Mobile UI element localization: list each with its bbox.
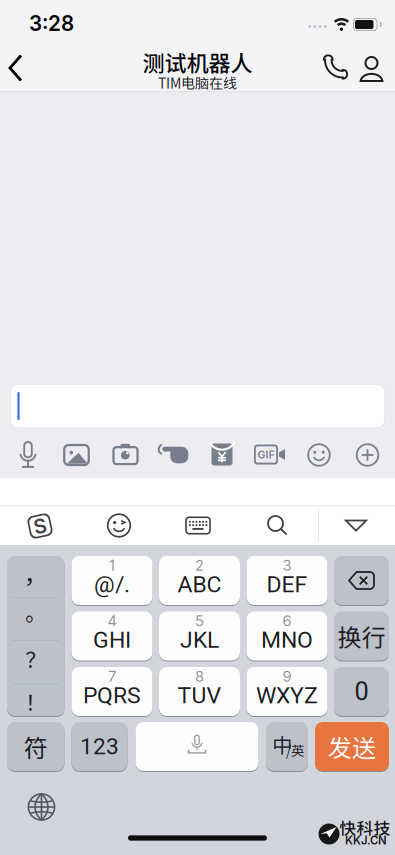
staticText: GHI <box>93 627 131 653</box>
staticText: WXYZ <box>256 682 318 709</box>
staticText: 9 <box>282 668 291 685</box>
staticText: 发送 <box>328 729 376 764</box>
button[interactable]: 换行 <box>334 611 389 661</box>
staticText: KKJ.CN <box>345 834 387 847</box>
button[interactable]: 发送 <box>315 721 389 771</box>
staticText: S <box>33 514 46 538</box>
staticText: /英 <box>286 740 304 760</box>
staticText: PQRS <box>83 682 141 709</box>
staticText: 2 <box>195 557 204 574</box>
staticText: JKL <box>180 627 219 653</box>
button[interactable]: Camera <box>110 442 140 468</box>
staticText: ， <box>24 556 48 590</box>
button[interactable]: 1 <box>71 555 152 605</box>
button[interactable]: Emoji <box>307 443 331 467</box>
staticText: 7 <box>108 668 116 685</box>
button[interactable]: Back <box>0 48 33 88</box>
button[interactable]: Nudge <box>158 443 188 467</box>
button[interactable]: 3 <box>246 555 327 605</box>
staticText: 4 <box>107 612 116 630</box>
button[interactable]: Next keyboard <box>27 792 56 821</box>
button[interactable]: 9 <box>246 666 327 716</box>
button[interactable]: Delete <box>334 555 389 605</box>
staticText: 。 <box>25 596 46 627</box>
staticText: ABC <box>177 571 221 598</box>
button[interactable]: Voice message <box>17 439 39 471</box>
button[interactable]: 符 <box>7 721 64 771</box>
button[interactable]: 4 <box>71 611 152 661</box>
button[interactable]: Sogou <box>26 512 53 539</box>
staticText: GIF <box>257 448 274 461</box>
button[interactable]: Voice call <box>313 49 353 89</box>
staticText: ！ <box>25 686 46 717</box>
staticText: 123 <box>80 733 119 760</box>
button[interactable]: 123 <box>71 721 127 771</box>
button[interactable]: 8 <box>159 666 240 716</box>
staticText: 换行 <box>337 619 385 653</box>
button[interactable]: 5 <box>159 611 240 661</box>
button[interactable]: 6 <box>246 611 327 661</box>
staticText: 6 <box>282 612 291 630</box>
button[interactable]: Keyboard layout <box>184 515 212 535</box>
button[interactable]: Emoji keyboard <box>106 513 131 538</box>
staticText: 5 <box>195 612 204 630</box>
button[interactable]: Search <box>266 514 288 536</box>
staticText: 测试机器人 <box>142 46 252 78</box>
button[interactable]: Space, voice input <box>135 721 258 771</box>
staticText: TIM电脑在线 <box>158 72 237 93</box>
button[interactable]: Profile <box>351 49 391 89</box>
staticText: 1 <box>109 557 115 574</box>
staticText: ？ <box>25 643 46 674</box>
button[interactable]: 测试机器人 <box>107 45 287 91</box>
button[interactable]: Photos <box>62 443 90 467</box>
staticText: 3 <box>282 557 291 574</box>
staticText: 3:28 <box>29 11 74 36</box>
staticText: 快科技 <box>339 815 390 839</box>
staticText: @/. <box>94 571 130 598</box>
staticText: TUV <box>177 682 221 709</box>
staticText: 8 <box>195 668 204 685</box>
button[interactable]: 中 <box>266 721 308 771</box>
button[interactable]: 0 <box>334 666 389 716</box>
button[interactable]: GIF <box>254 443 287 465</box>
staticText: 0 <box>354 677 368 706</box>
button[interactable]: 2 <box>159 555 240 605</box>
button[interactable]: Message input <box>10 384 385 428</box>
button[interactable]: Red packet <box>210 442 233 466</box>
staticText: MNO <box>261 627 313 653</box>
staticText: 符 <box>24 729 48 764</box>
button[interactable]: 7 <box>71 666 152 716</box>
button[interactable]: Hide keyboard <box>344 518 368 532</box>
button[interactable]: ， <box>7 556 64 717</box>
button[interactable]: More <box>355 443 379 467</box>
staticText: DEF <box>266 571 307 598</box>
staticText: 中 <box>272 729 292 758</box>
